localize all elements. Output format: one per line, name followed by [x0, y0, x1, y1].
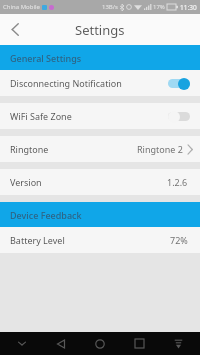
staticText: Ringtone [10, 143, 49, 155]
staticText: Ringtone 2 [137, 143, 183, 155]
staticText: 13B/s [102, 3, 118, 11]
staticText: 17% [153, 3, 165, 11]
staticText: China Mobile [3, 3, 40, 11]
button[interactable]: Back [44, 332, 78, 355]
button[interactable]: Hide navigation bar [161, 332, 195, 355]
staticText: Battery Level [10, 234, 65, 246]
button[interactable]: Collapse [5, 332, 39, 355]
staticText: Settings [75, 21, 125, 39]
button[interactable]: Ringtone [0, 136, 200, 162]
staticText: Disconnecting Notification [10, 77, 122, 89]
button[interactable]: Version [0, 169, 200, 195]
staticText: Device Feedback [10, 209, 82, 221]
staticText: 72% [170, 234, 188, 246]
button[interactable]: Home [83, 332, 117, 355]
staticText: 11:30 [180, 3, 197, 12]
button[interactable]: Recents [122, 332, 156, 355]
button[interactable]: WiFi Safe Zone [0, 103, 200, 129]
staticText: 1.2.6 [167, 176, 188, 188]
staticText: General Settings [10, 52, 82, 64]
button[interactable]: Battery Level [0, 227, 200, 253]
staticText: WiFi Safe Zone [10, 110, 72, 122]
button[interactable]: Back [0, 14, 31, 45]
staticText: Version [10, 176, 42, 188]
button[interactable]: Disconnecting Notification [0, 70, 200, 96]
